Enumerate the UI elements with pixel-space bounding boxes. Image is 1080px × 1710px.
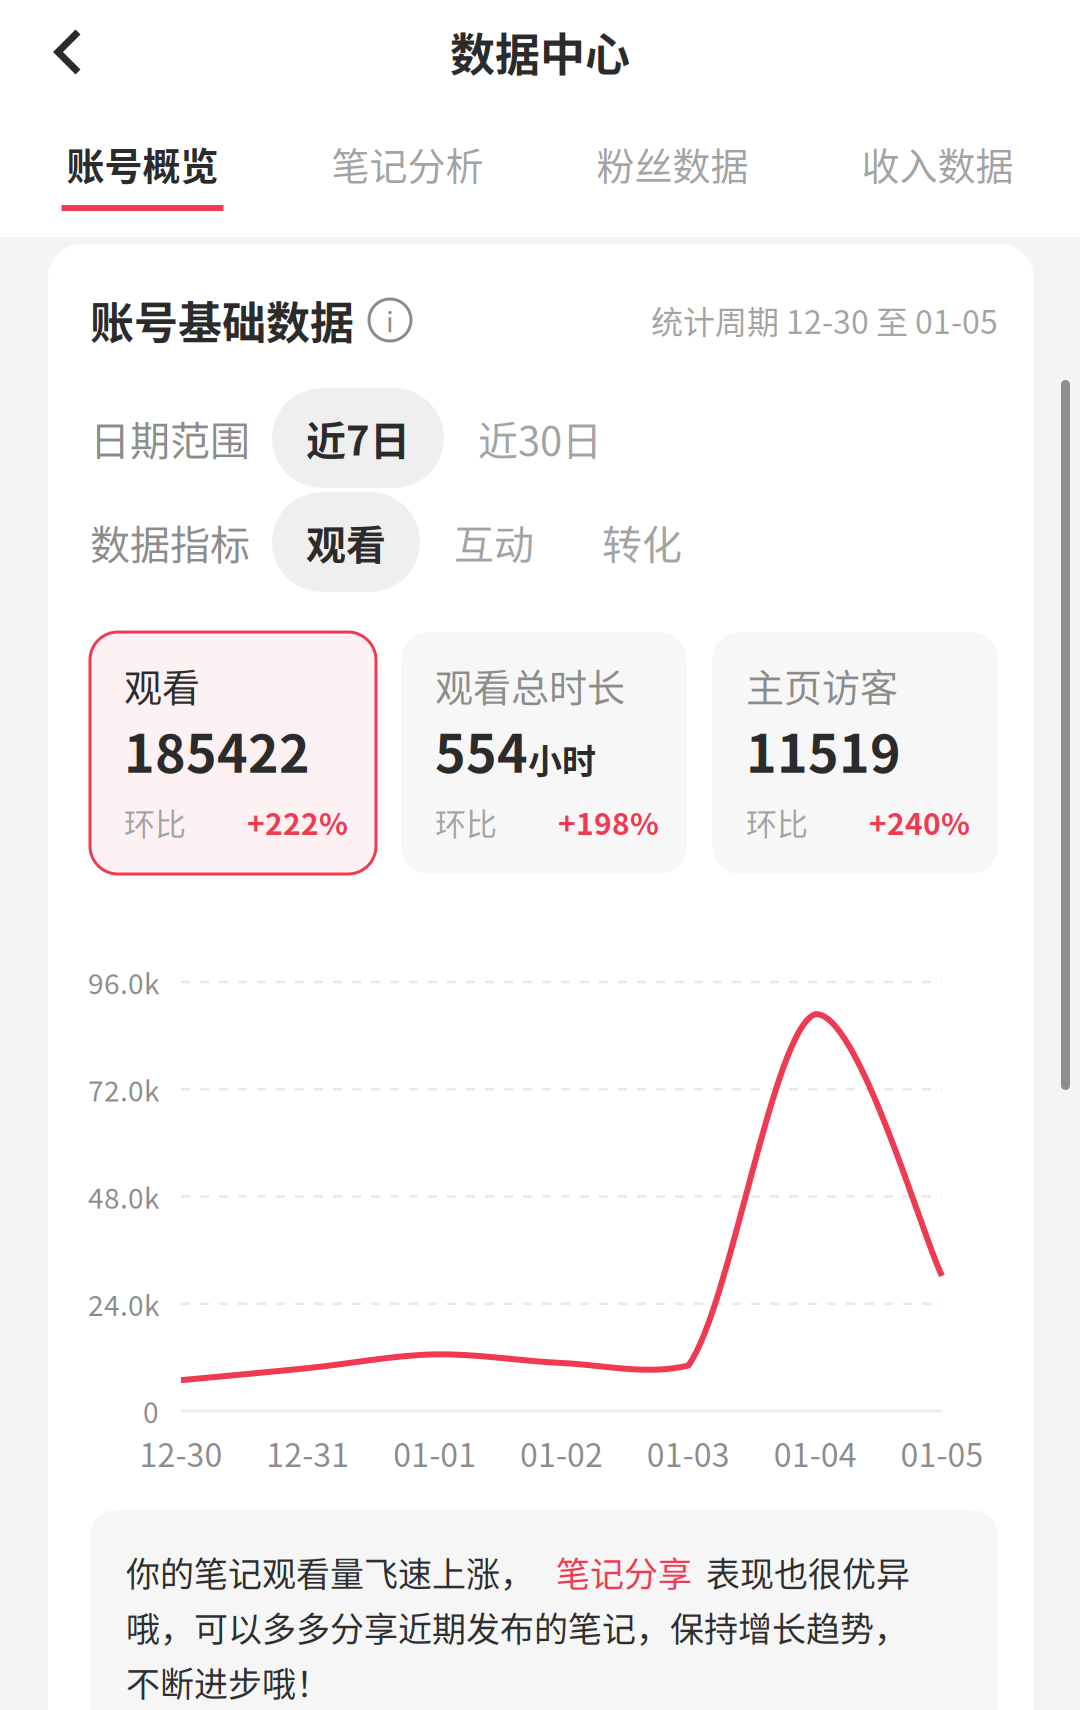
- staticText: 你的笔记观看量飞速上涨，: [126, 1547, 534, 1597]
- staticText: 12-31: [266, 1430, 349, 1476]
- staticText: 数据中心: [450, 19, 630, 85]
- staticText: 收入数据: [861, 136, 1013, 191]
- staticText: 互动: [454, 513, 534, 571]
- staticText: 01-02: [520, 1430, 603, 1476]
- staticText: 185422: [124, 712, 310, 788]
- staticText: 近7日: [306, 409, 410, 467]
- staticText: 表现也很优异: [706, 1547, 910, 1597]
- staticText: 观看: [306, 513, 386, 571]
- staticText: +240%: [869, 800, 970, 844]
- staticText: 日期范围: [90, 409, 250, 467]
- button[interactable]: 笔记分析: [275, 136, 540, 211]
- button[interactable]: 粉丝数据: [540, 136, 805, 211]
- staticText: 554: [435, 712, 528, 788]
- button[interactable]: Info: [354, 298, 412, 342]
- staticText: 账号基础数据: [90, 288, 354, 352]
- staticText: 统计周期 12-30 至 01-05: [651, 297, 998, 343]
- staticText: 环比: [746, 800, 808, 844]
- button[interactable]: 转化: [568, 492, 716, 592]
- staticText: 哦，可以多多分享近期发布的笔记，保持增长趋势，: [126, 1602, 908, 1652]
- staticText: 01-01: [393, 1430, 476, 1476]
- button[interactable]: 近30日: [444, 388, 636, 488]
- button[interactable]: 观看: [90, 632, 376, 874]
- staticText: 近30日: [478, 409, 602, 467]
- button[interactable]: 主页访客: [712, 632, 998, 874]
- staticText: 01-04: [774, 1430, 857, 1476]
- staticText: 48.0k: [88, 1176, 159, 1217]
- staticText: 环比: [124, 800, 186, 844]
- staticText: 24.0k: [88, 1283, 159, 1324]
- staticText: 环比: [435, 800, 497, 844]
- button[interactable]: 收入数据: [805, 136, 1070, 211]
- button[interactable]: Back: [0, 12, 108, 92]
- button[interactable]: 观看总时长: [401, 632, 687, 874]
- button[interactable]: 账号概览: [10, 136, 275, 211]
- staticText: 12-30: [139, 1430, 222, 1476]
- staticText: 小时: [528, 734, 596, 784]
- staticText: 转化: [602, 513, 682, 571]
- staticText: +222%: [247, 800, 348, 844]
- staticText: 笔记分析: [331, 136, 483, 191]
- button[interactable]: 观看: [272, 492, 420, 592]
- staticText: 主页访客: [746, 657, 898, 712]
- staticText: 数据指标: [90, 513, 250, 571]
- staticText: 观看: [124, 657, 200, 712]
- staticText: 账号概览: [66, 136, 218, 191]
- staticText: i: [386, 300, 394, 340]
- staticText: 96.0k: [88, 962, 159, 1002]
- staticText: 不断进步哦！: [126, 1657, 330, 1707]
- staticText: 观看总时长: [435, 657, 625, 712]
- staticText: 笔记分享: [556, 1547, 692, 1597]
- staticText: 72.0k: [88, 1069, 159, 1109]
- button[interactable]: 近7日: [272, 388, 444, 488]
- staticText: 0: [143, 1391, 159, 1431]
- staticText: +198%: [558, 800, 659, 844]
- staticText: 11519: [746, 712, 901, 788]
- button[interactable]: 互动: [420, 492, 568, 592]
- staticText: 01-03: [647, 1430, 730, 1476]
- staticText: 粉丝数据: [596, 136, 748, 191]
- staticText: 01-05: [900, 1430, 983, 1476]
